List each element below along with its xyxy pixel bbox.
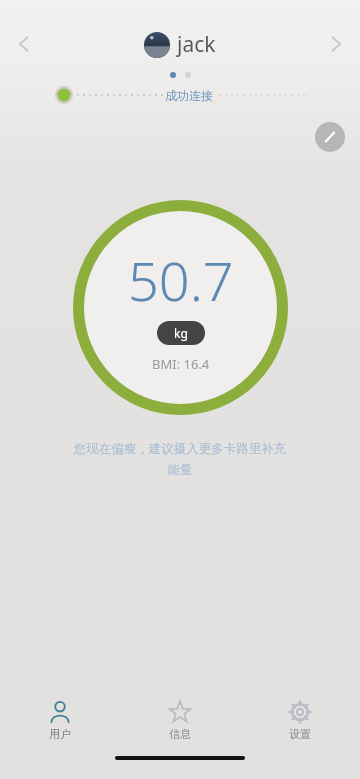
- staticText: 信息: [169, 727, 191, 741]
- button[interactable]: kg: [174, 325, 188, 341]
- staticText: 您现在偏瘦，建议摄入更多卡路里补充 能量: [55, 441, 305, 477]
- button[interactable]: 信息: [120, 693, 240, 747]
- button[interactable]: Edit: [315, 122, 345, 152]
- button[interactable]: 设置: [240, 693, 360, 747]
- staticText: 设置: [289, 727, 311, 741]
- staticText: BMI: 16.4: [152, 355, 210, 373]
- button[interactable]: 用户: [0, 693, 120, 747]
- staticText: 成功连接: [165, 88, 213, 103]
- button[interactable]: jack: [144, 30, 216, 59]
- staticText: kg: [174, 325, 188, 341]
- button[interactable]: Previous user: [0, 20, 48, 68]
- staticText: 用户: [49, 727, 71, 741]
- button[interactable]: Next user: [312, 20, 360, 68]
- staticText: 50.7: [128, 243, 234, 317]
- button[interactable]: [170, 72, 176, 78]
- staticText: jack: [177, 30, 216, 59]
- button[interactable]: [185, 72, 191, 78]
